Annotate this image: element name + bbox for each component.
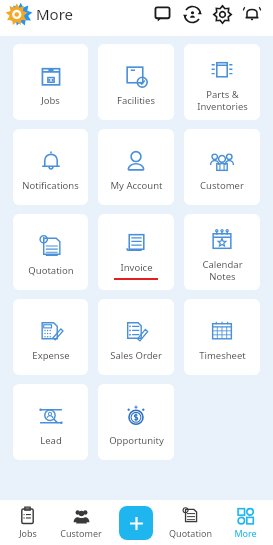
button[interactable]: Settings bbox=[209, 1, 235, 27]
staticText: More bbox=[36, 4, 74, 24]
button[interactable]: Jobs bbox=[13, 44, 88, 120]
button[interactable]: Calendar Notes bbox=[184, 214, 260, 290]
button[interactable]: Facilities bbox=[98, 44, 174, 120]
staticText: Expense bbox=[32, 349, 70, 362]
button[interactable]: Expense bbox=[13, 299, 88, 375]
button[interactable]: Quotation bbox=[163, 500, 218, 545]
staticText: Invoice bbox=[120, 261, 153, 274]
button[interactable]: Timesheet bbox=[184, 299, 260, 375]
button[interactable]: Customer bbox=[54, 500, 108, 545]
button[interactable]: Messages bbox=[149, 1, 175, 27]
staticText: Customer bbox=[60, 527, 102, 539]
staticText: Quotation bbox=[28, 264, 74, 277]
button[interactable]: More bbox=[218, 500, 273, 545]
staticText: Sales Order bbox=[110, 349, 162, 362]
staticText: Jobs bbox=[19, 527, 37, 539]
button[interactable]: Add bbox=[119, 506, 153, 540]
button[interactable]: Jobs bbox=[0, 500, 54, 545]
button[interactable]: Customer bbox=[184, 129, 260, 205]
staticText: Calendar Notes bbox=[202, 258, 243, 282]
button[interactable]: Sales Order bbox=[98, 299, 174, 375]
staticText: Opportunity bbox=[109, 434, 164, 447]
button[interactable]: Notifications bbox=[13, 129, 88, 205]
button[interactable]: Opportunity bbox=[98, 384, 174, 460]
button[interactable]: Sync contacts bbox=[179, 1, 205, 27]
button[interactable]: Parts & Inventories bbox=[184, 44, 260, 120]
staticText: Facilities bbox=[117, 94, 155, 107]
staticText: My Account bbox=[110, 179, 163, 192]
button[interactable]: Quotation bbox=[13, 214, 88, 290]
staticText: Lead bbox=[40, 434, 62, 447]
staticText: Jobs bbox=[41, 94, 60, 107]
staticText: Quotation bbox=[169, 527, 212, 539]
button[interactable]: My Account bbox=[98, 129, 174, 205]
button[interactable]: Lead bbox=[13, 384, 88, 460]
staticText: Timesheet bbox=[199, 349, 246, 362]
button[interactable]: Notifications bbox=[239, 1, 265, 27]
staticText: Notifications bbox=[22, 179, 79, 192]
staticText: Customer bbox=[200, 179, 244, 192]
staticText: More bbox=[234, 527, 257, 539]
staticText: Parts & Inventories bbox=[197, 88, 248, 112]
button[interactable]: Invoice bbox=[98, 214, 174, 290]
